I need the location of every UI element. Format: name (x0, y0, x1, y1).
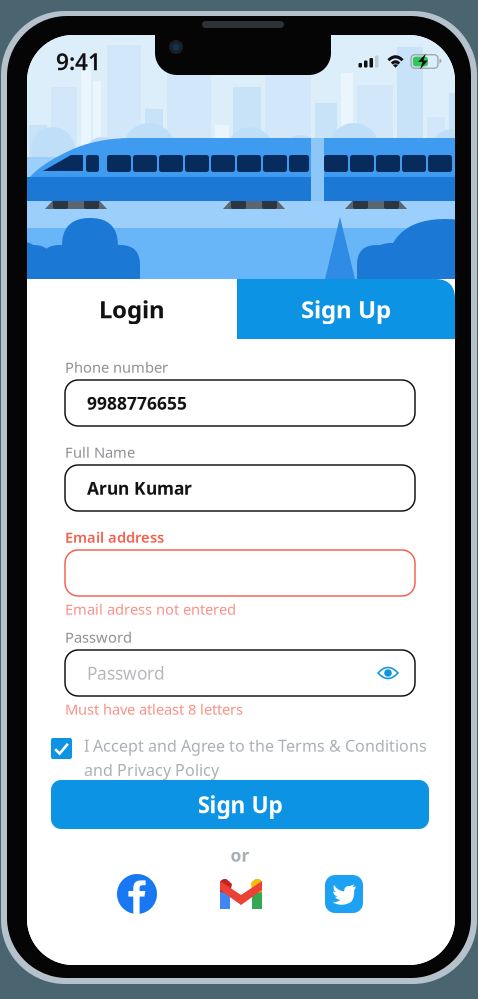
button[interactable]: I Accept and Agree to the Terms & Condit… (51, 735, 429, 769)
staticText: Login (99, 293, 165, 325)
button[interactable]: Login (27, 279, 237, 339)
button[interactable]: Password (65, 650, 415, 696)
staticText: Full Name (65, 442, 135, 462)
button[interactable] (65, 550, 415, 596)
button[interactable]: Sign up with Google (220, 873, 262, 915)
staticText: Sign Up (301, 293, 391, 325)
button[interactable]: Arun Kumar (65, 465, 415, 511)
staticText: and Privacy Policy (84, 759, 219, 780)
staticText: Password (65, 627, 132, 647)
staticText: I Accept and Agree to the Terms & Condit… (84, 735, 427, 756)
staticText: Sign Up (197, 789, 282, 819)
button[interactable]: Sign Up (237, 279, 455, 339)
staticText: Arun Kumar (87, 476, 192, 499)
staticText: or (230, 843, 249, 866)
button[interactable]: Sign up with Facebook (117, 874, 157, 914)
staticText: 9:41 (56, 46, 101, 76)
button[interactable]: 9988776655 (65, 380, 415, 426)
staticText: 9988776655 (87, 391, 187, 414)
staticText: Password (87, 661, 165, 684)
button[interactable]: Sign up with Twitter (325, 875, 363, 913)
staticText: Phone number (65, 357, 168, 377)
staticText: Email adress not entered (65, 599, 236, 619)
button[interactable]: Sign Up (51, 780, 429, 829)
staticText: Email address (65, 527, 164, 547)
staticText: Must have atleast 8 letters (65, 699, 243, 719)
